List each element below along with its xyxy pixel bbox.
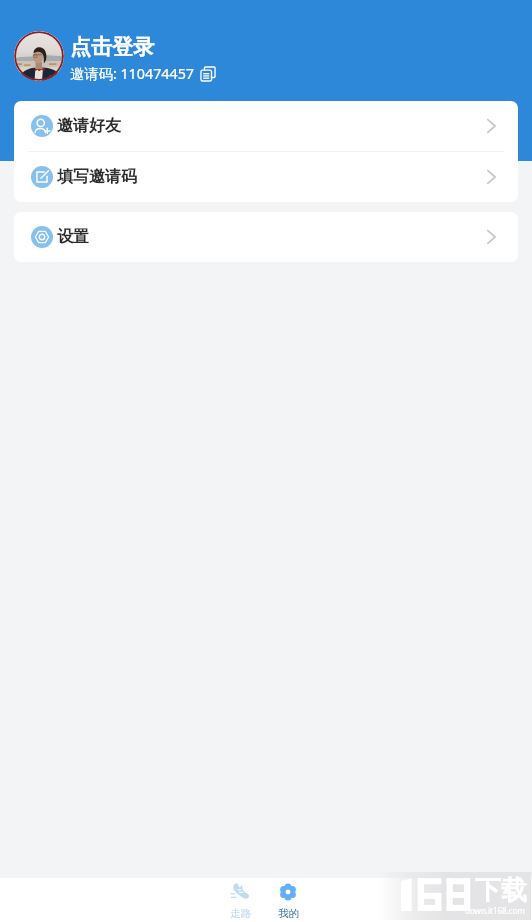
staticText: 邀请码: 110474457 xyxy=(70,64,195,84)
staticText: 走路 xyxy=(230,907,251,920)
staticText: down.it168.com xyxy=(465,905,525,916)
button[interactable]: Profile avatar xyxy=(14,31,64,81)
staticText: 填写邀请码 xyxy=(57,167,137,187)
button[interactable]: 走路 xyxy=(216,878,264,922)
button[interactable]: 我的 xyxy=(264,878,312,922)
staticText: 点击登录 xyxy=(70,34,154,60)
staticText: 设置 xyxy=(57,227,89,247)
staticText: 我的 xyxy=(278,907,299,920)
staticText: 下载 xyxy=(475,874,527,907)
button[interactable]: 设置 xyxy=(14,212,518,262)
button[interactable]: 邀请好友 xyxy=(14,101,518,151)
button[interactable]: 填写邀请码 xyxy=(14,152,518,202)
button[interactable]: Copy invite code xyxy=(200,66,216,82)
staticText: 邀请好友 xyxy=(57,116,121,136)
